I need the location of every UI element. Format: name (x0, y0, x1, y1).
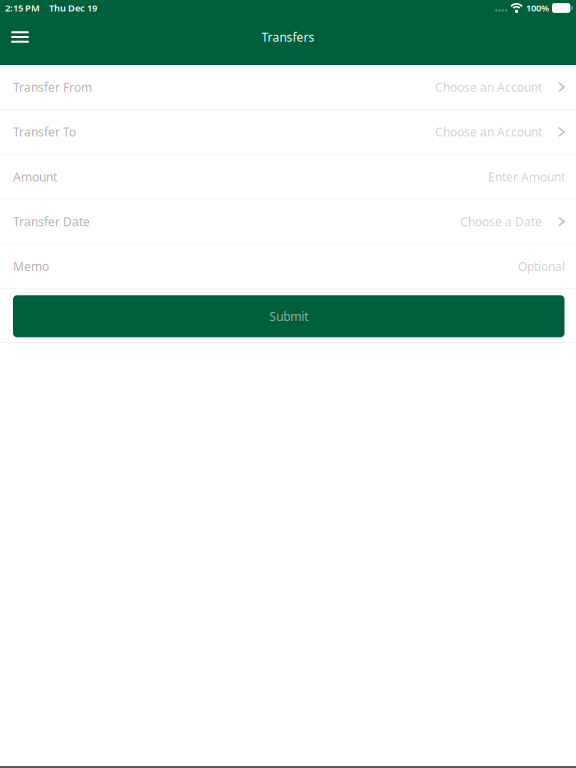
button[interactable]: Transfer To (0, 110, 576, 155)
staticText: Submit (269, 308, 308, 324)
staticText: Transfer To (13, 124, 76, 140)
staticText: Choose a Date (460, 214, 542, 229)
staticText: 100% (526, 2, 549, 14)
button[interactable]: Submit (13, 295, 564, 337)
staticText: Transfer Date (13, 214, 90, 229)
staticText: Amount (13, 169, 57, 185)
staticText: Thu Dec 19 (49, 2, 97, 14)
staticText: Choose an Account (435, 79, 542, 95)
staticText: Choose an Account (435, 124, 542, 140)
staticText: 2:15 PM (5, 2, 40, 14)
staticText: Memo (13, 258, 49, 274)
button[interactable]: Amount (0, 155, 576, 199)
staticText: Transfers (261, 29, 314, 45)
button[interactable]: Transfer Date (0, 199, 576, 244)
button[interactable]: Menu (1, 22, 39, 52)
button[interactable]: Memo (0, 244, 576, 289)
button[interactable]: Transfer From (0, 65, 576, 110)
staticText: Optional (518, 258, 565, 274)
staticText: Enter Amount (488, 169, 565, 185)
staticText: Transfer From (13, 79, 92, 95)
